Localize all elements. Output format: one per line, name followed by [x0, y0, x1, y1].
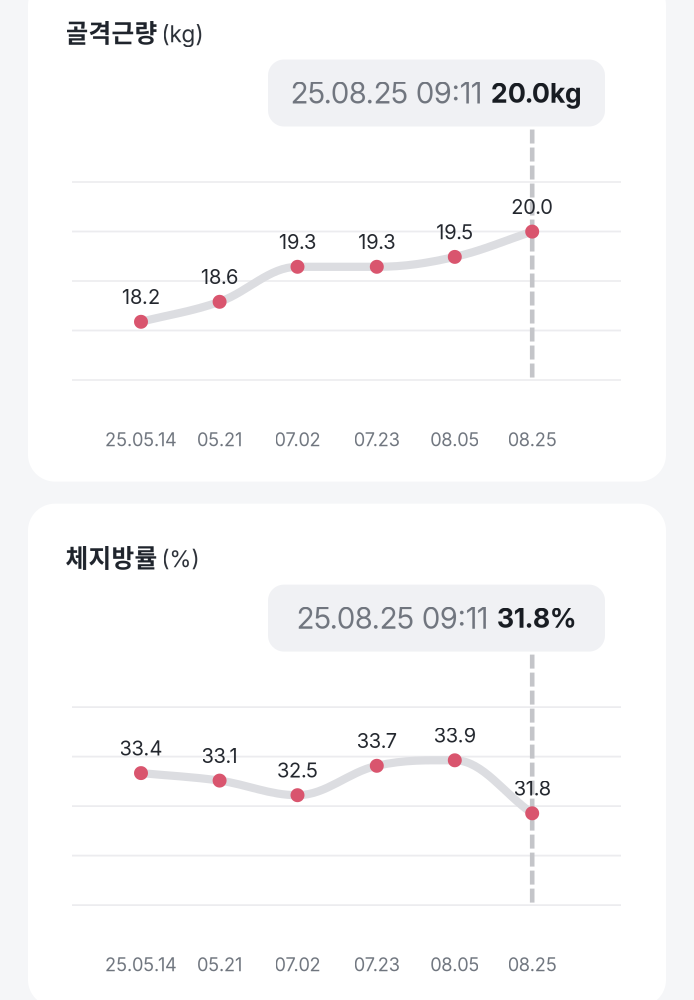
staticText: 25.08.25 09:11 [297, 600, 488, 636]
staticText: 25.05.14 [105, 954, 177, 976]
staticText: 32.5 [277, 758, 318, 782]
staticText: 07.02 [274, 954, 320, 976]
staticText: 19.3 [358, 230, 395, 254]
staticText: 07.23 [354, 429, 400, 450]
staticText: 19.5 [436, 220, 473, 244]
staticText: (kg) [161, 20, 203, 48]
staticText: 07.02 [274, 429, 320, 450]
staticText: 25.05.14 [105, 429, 177, 450]
staticText: 08.05 [430, 429, 479, 450]
staticText: 20.0 [511, 194, 553, 219]
staticText: 08.25 [508, 429, 557, 450]
staticText: 33.7 [357, 729, 397, 753]
button[interactable]: 체지방률 [28, 504, 666, 1000]
staticText: 25.08.25 09:11 [291, 75, 482, 111]
button[interactable]: 골격근량 [28, 0, 666, 482]
staticText: 19.3 [279, 230, 316, 254]
staticText: 33.9 [434, 723, 476, 747]
staticText: 31.8 [514, 776, 551, 800]
staticText: 33.4 [119, 736, 162, 760]
staticText: (%) [161, 545, 199, 573]
staticText: 체지방률 [65, 539, 157, 574]
staticText: 07.23 [354, 954, 400, 976]
staticText: 05.21 [197, 954, 242, 976]
staticText: 31.8% [497, 602, 576, 634]
staticText: 08.05 [430, 954, 479, 976]
staticText: 08.25 [508, 954, 557, 976]
staticText: 골격근량 [65, 14, 157, 49]
staticText: 33.1 [202, 743, 238, 768]
staticText: 18.6 [201, 265, 238, 289]
staticText: 20.0kg [491, 77, 582, 109]
staticText: 18.2 [122, 285, 160, 309]
staticText: 05.21 [197, 429, 242, 450]
